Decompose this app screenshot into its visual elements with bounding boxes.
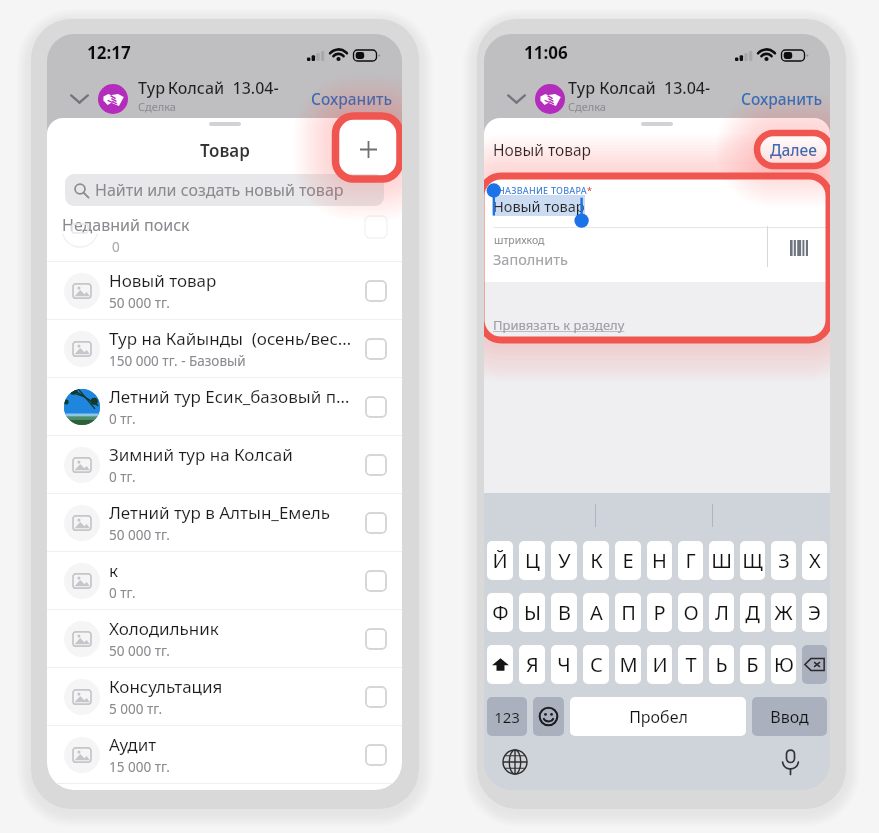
staticText: Сделка (568, 99, 606, 114)
button[interactable]: Холодильник (47, 610, 402, 667)
button[interactable]: Зимний тур на Колсай (47, 436, 402, 493)
button[interactable]: к (47, 552, 402, 609)
button[interactable]: Б (740, 645, 765, 684)
button[interactable]: Привязать к разделу (493, 316, 625, 334)
button[interactable]: Collapse (503, 86, 529, 112)
button[interactable]: Select item (365, 512, 387, 534)
button[interactable]: Пробел (570, 697, 746, 736)
staticText: Недавний поиск (62, 214, 190, 236)
staticText: Заполнить (493, 249, 568, 269)
button[interactable]: П (615, 593, 641, 632)
staticText: Ы (524, 599, 541, 626)
staticText: Пробел (629, 706, 688, 728)
staticText: к (109, 559, 119, 582)
staticText: Аудит (109, 733, 157, 756)
staticText: Э (808, 599, 821, 626)
button[interactable]: Backspace (802, 645, 827, 684)
staticText: Х (809, 547, 821, 574)
staticText: Я (526, 651, 539, 678)
button[interactable]: Н (647, 541, 672, 580)
button[interactable]: Найти или создать новый товар (65, 174, 384, 206)
button[interactable]: О (678, 593, 703, 632)
button[interactable]: Летний тур Есик_базовый па… (47, 378, 402, 435)
staticText: Ф (492, 599, 509, 626)
button[interactable]: А (583, 593, 609, 632)
button[interactable]: Т (678, 645, 703, 684)
button[interactable]: Л (709, 593, 734, 632)
button[interactable]: Ч (551, 645, 577, 684)
staticText: Г (685, 547, 696, 574)
staticText: З (778, 547, 790, 574)
button[interactable]: Select item (365, 744, 387, 766)
button[interactable]: С (583, 645, 609, 684)
staticText: Далее (770, 139, 817, 160)
button[interactable]: М (615, 645, 641, 684)
button[interactable]: Select item (365, 338, 387, 360)
button[interactable]: Аудит (47, 726, 402, 783)
button[interactable]: Г (678, 541, 703, 580)
staticText: Консультация (109, 675, 223, 698)
button[interactable]: Э (802, 593, 827, 632)
button[interactable]: Add product (343, 124, 393, 174)
button[interactable]: Select item (365, 280, 387, 302)
button[interactable]: Emoji (533, 697, 564, 736)
button[interactable]: Е (615, 541, 641, 580)
staticText: Ш (711, 547, 732, 574)
button[interactable]: Консультация (47, 668, 402, 725)
staticText: 12:17 (87, 41, 131, 64)
staticText: 0 тг. (109, 584, 136, 602)
staticText: Ц (525, 547, 540, 574)
staticText: Т (685, 651, 697, 678)
button[interactable]: Сохранить (737, 82, 827, 115)
button[interactable]: Ж (771, 593, 796, 632)
button[interactable]: Новый товар (47, 262, 402, 319)
button[interactable]: В (551, 593, 577, 632)
button[interactable]: Р (647, 593, 672, 632)
button[interactable]: Change keyboard (500, 747, 530, 777)
staticText: П (621, 599, 636, 626)
button[interactable]: Select item (365, 454, 387, 476)
button[interactable]: Д (740, 593, 765, 632)
button[interactable]: Щ (740, 541, 765, 580)
staticText: Ю (774, 651, 794, 678)
button[interactable]: Ввод (752, 697, 827, 736)
staticText: Товар (200, 139, 250, 162)
button[interactable]: Сохранить (307, 82, 397, 115)
button[interactable]: Й (487, 541, 513, 580)
button[interactable]: Ф (487, 593, 513, 632)
button[interactable]: 123 (487, 697, 527, 736)
button[interactable]: Ц (519, 541, 545, 580)
button[interactable]: Тур на Кайынды (осень/весн… (47, 320, 402, 377)
button[interactable]: Летний тур в Алтын_Емель (47, 494, 402, 551)
button[interactable]: Я (519, 645, 545, 684)
staticText: 150 000 тг. - Базовый (109, 352, 246, 370)
button[interactable]: Select item (365, 628, 387, 650)
button[interactable]: Shift (487, 645, 513, 684)
staticText: Ж (774, 599, 793, 626)
button[interactable]: У (551, 541, 577, 580)
button[interactable]: З (771, 541, 796, 580)
staticText: К (590, 547, 603, 574)
button[interactable]: Далее (757, 133, 830, 166)
button[interactable]: Ю (771, 645, 796, 684)
button[interactable]: Х (802, 541, 827, 580)
button[interactable]: Scan barcode (778, 227, 819, 268)
button[interactable]: Select item (365, 570, 387, 592)
staticText: Л (715, 599, 729, 626)
staticText: 0 тг. (109, 468, 136, 486)
staticText: 5 000 тг. (109, 700, 163, 718)
button[interactable]: Select item (365, 686, 387, 708)
button[interactable]: Select item (365, 396, 387, 418)
staticText: Найти или создать новый товар (95, 179, 344, 201)
button[interactable]: Ы (519, 593, 545, 632)
button[interactable]: Collapse (66, 86, 92, 112)
button[interactable]: К (583, 541, 609, 580)
button[interactable]: Dictation (775, 747, 805, 777)
staticText: Сделка (138, 99, 176, 114)
staticText: Новый товар (109, 269, 217, 292)
button[interactable]: Ь (709, 645, 734, 684)
button[interactable]: Ш (709, 541, 734, 580)
staticText: Тур на Кайынды (осень/весн… (109, 327, 357, 350)
button[interactable]: И (647, 645, 672, 684)
staticText: С (590, 651, 603, 678)
